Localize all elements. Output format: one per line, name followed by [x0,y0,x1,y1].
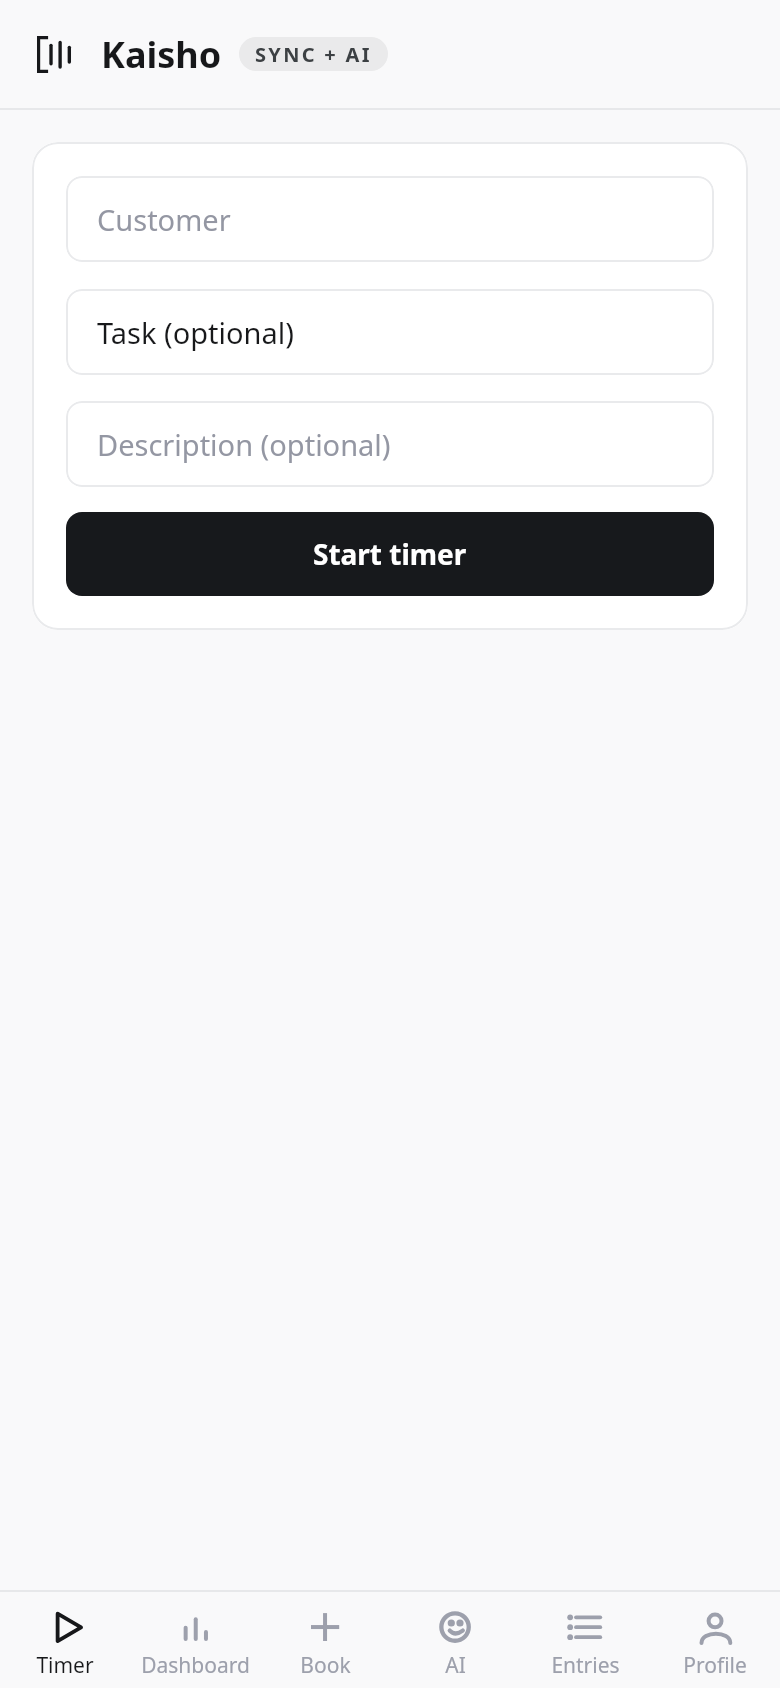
staticText: Dashboard [141,1651,250,1680]
button[interactable]: Profile [650,1592,780,1688]
staticText: Kaisho [101,30,222,79]
button[interactable]: Book [260,1592,390,1688]
button[interactable]: Description (optional) [66,401,714,487]
staticText: AI [445,1651,466,1680]
staticText: Start timer [313,535,467,573]
button[interactable]: Entries [520,1592,650,1688]
staticText: SYNC + AI [255,41,372,68]
button[interactable]: Timer [0,1592,130,1688]
button[interactable]: Task (optional) [66,289,714,375]
button[interactable]: AI [390,1592,520,1688]
staticText: Entries [551,1651,620,1680]
staticText: Profile [683,1651,747,1680]
staticText: Timer [36,1651,94,1680]
button[interactable]: Dashboard [130,1592,260,1688]
staticText: Book [300,1651,351,1680]
staticText: Task (optional) [97,313,294,352]
staticText: Description (optional) [97,425,391,464]
button[interactable]: Customer [66,176,714,262]
button[interactable]: Start timer [66,512,714,596]
other: Kaisho logo [37,36,71,73]
button[interactable]: SYNC + AI [239,37,388,71]
staticText: Customer [97,200,231,239]
